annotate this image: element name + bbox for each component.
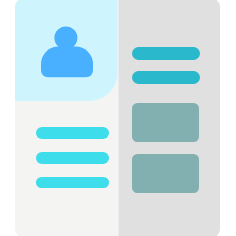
button[interactable]: Contact name (132, 47, 200, 60)
button[interactable]: Detail block two (132, 154, 199, 193)
button[interactable]: Profile photo (38, 24, 96, 80)
button[interactable]: Info line two (36, 152, 109, 164)
button[interactable]: Detail block one (132, 103, 199, 142)
button[interactable]: Contact role (132, 71, 200, 84)
button[interactable]: Info line three (36, 177, 109, 188)
button[interactable]: Info line one (36, 127, 109, 139)
